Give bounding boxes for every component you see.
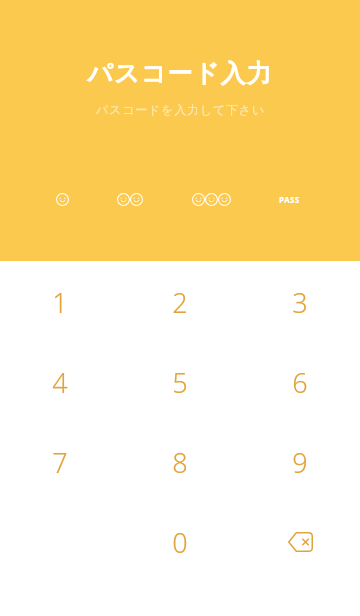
staticText: 3 [292,284,308,321]
button[interactable]: 1 [0,262,120,342]
button[interactable]: 3 digit passcode [190,191,233,208]
staticText: パスコード入力 [87,58,273,89]
staticText: 2 [172,284,188,321]
button[interactable]: 9 [240,422,360,502]
button[interactable]: 2 [120,262,240,342]
staticText: 6 [292,364,308,401]
button[interactable]: 3 [240,262,360,342]
staticText: 0 [172,524,188,561]
staticText: パスコードを入力して下さい [96,102,265,117]
staticText: PASS [279,194,300,205]
button[interactable]: 5 [120,342,240,422]
button[interactable]: 7 [0,422,120,502]
staticText: 7 [52,444,68,481]
button[interactable]: 4 [0,342,120,422]
staticText: 1 [52,284,68,321]
button[interactable]: 1 digit passcode [54,191,71,208]
staticText: 5 [172,364,188,401]
staticText: 4 [52,364,68,401]
staticText: 9 [292,444,308,481]
button[interactable]: Delete [240,502,360,582]
button[interactable]: PASS [277,192,302,207]
button[interactable]: 2 digit passcode [115,191,145,208]
staticText: 8 [172,444,188,481]
button[interactable]: 0 [120,502,240,582]
button[interactable]: 6 [240,342,360,422]
button[interactable]: 8 [120,422,240,502]
